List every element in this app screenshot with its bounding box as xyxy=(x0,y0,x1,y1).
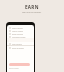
staticText: Watch a video xyxy=(12,30,24,32)
button[interactable]: Invite a friend xyxy=(9,32,32,35)
button[interactable]: Read an article xyxy=(9,46,32,49)
staticText: sign up in 60 seconds xyxy=(22,11,42,14)
staticText: Terms apply xyxy=(9,67,19,69)
button[interactable]: Daily check-in xyxy=(9,26,32,29)
staticText: Daily check-in xyxy=(12,27,23,29)
button[interactable]: Play a game xyxy=(9,42,32,45)
button[interactable] xyxy=(9,63,30,66)
staticText: Play a game xyxy=(12,43,22,45)
staticText: EARN xyxy=(25,4,39,10)
button[interactable]: Complete survey xyxy=(9,35,32,38)
staticText: Read an article xyxy=(12,47,24,49)
staticText: Complete survey xyxy=(12,36,26,38)
staticText: Invite a friend xyxy=(12,33,24,35)
button[interactable]: Watch a video xyxy=(9,29,32,32)
